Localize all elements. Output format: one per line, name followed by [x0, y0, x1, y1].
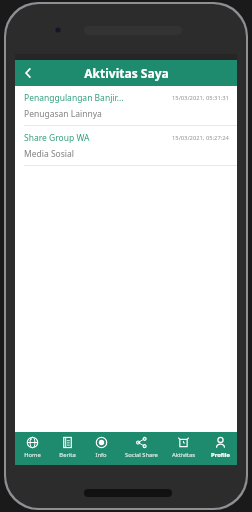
staticText: Profile [211, 451, 230, 459]
button[interactable]: Penanggulangan Banjir... [15, 86, 237, 125]
staticText: Berita [59, 451, 76, 459]
button[interactable]: Berita [50, 432, 84, 465]
staticText: Penanggulangan Banjir... [24, 92, 172, 104]
button[interactable]: Back [15, 60, 41, 86]
staticText: Aktivitas [172, 451, 195, 459]
button[interactable]: Home [15, 432, 50, 465]
staticText: 15/03/2021, 05:27:24 [172, 134, 229, 142]
staticText: Penugasan Lainnya [24, 108, 102, 120]
staticText: Aktivitas Saya [84, 65, 169, 81]
button[interactable]: Profile [203, 432, 237, 465]
staticText: Media Sosial [24, 148, 74, 160]
staticText: Info [95, 451, 107, 459]
staticText: Home [24, 451, 41, 459]
button[interactable]: Share Group WA [15, 126, 237, 165]
staticText: 15/03/2021, 05:31:31 [172, 94, 229, 102]
button[interactable]: Info [84, 432, 118, 465]
staticText: Share Group WA [24, 132, 172, 144]
button[interactable]: Aktivitas [164, 432, 203, 465]
staticText: Social Share [125, 451, 158, 459]
button[interactable]: Social Share [118, 432, 164, 465]
